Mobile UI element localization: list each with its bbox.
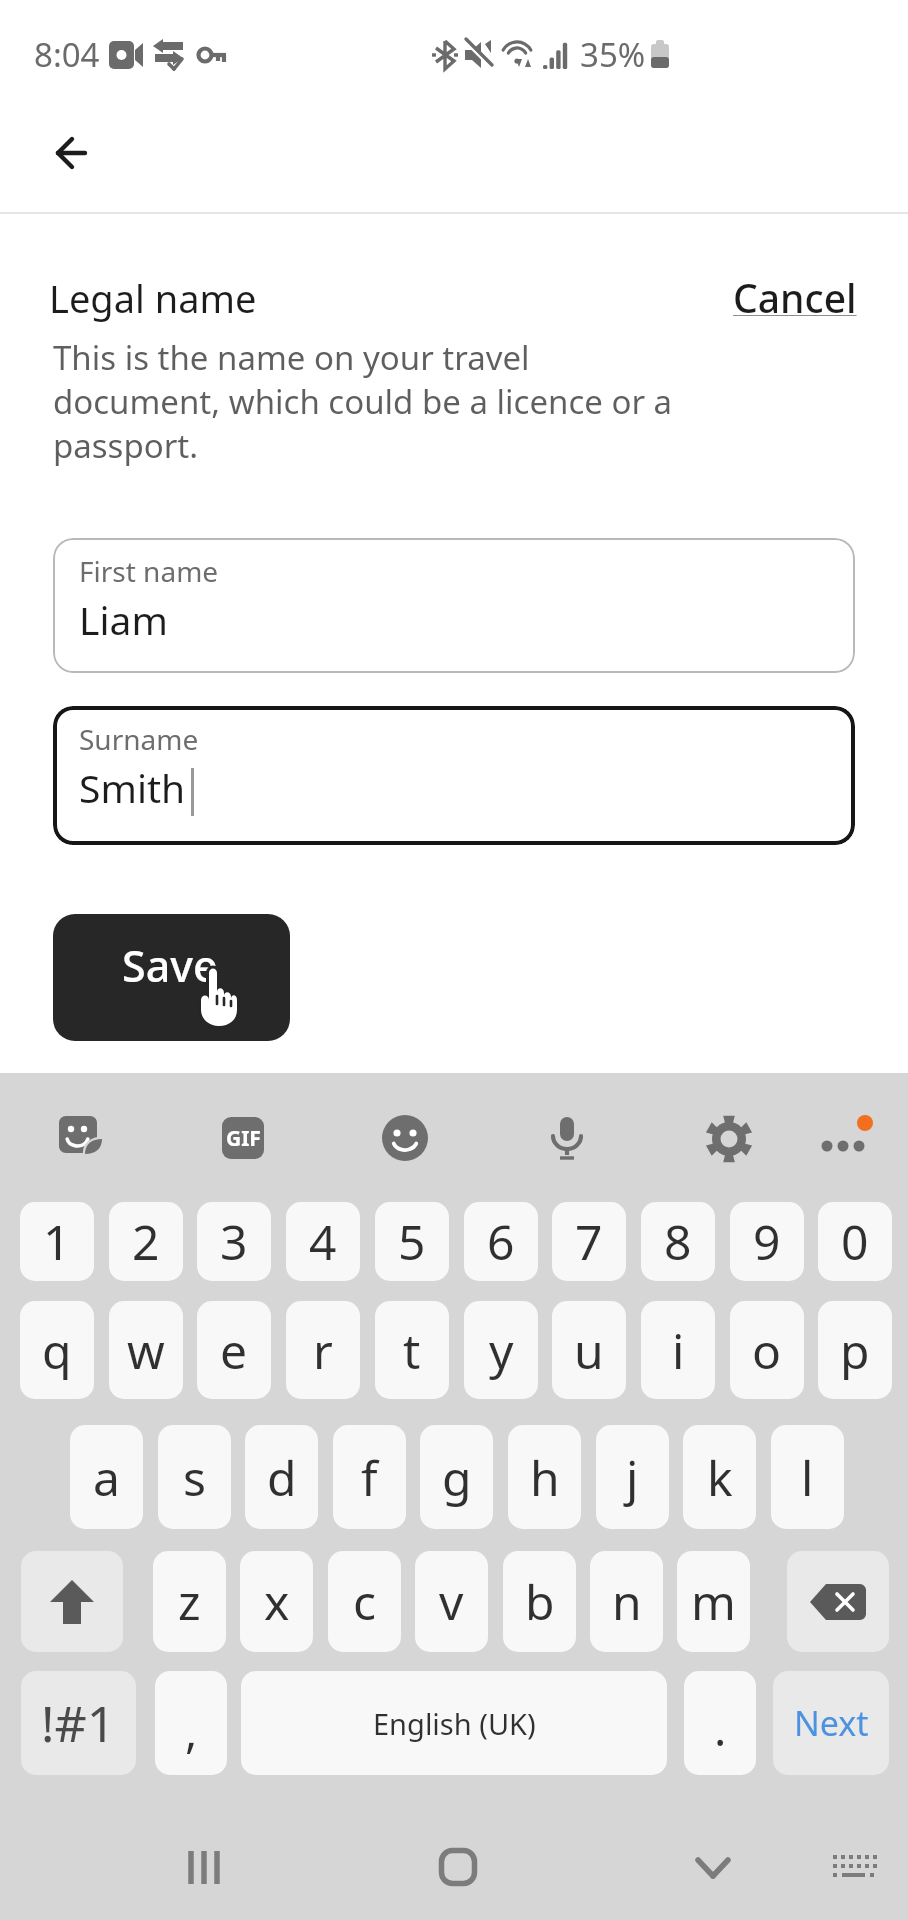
staticText: Smith [79, 761, 186, 814]
staticText: 0 [841, 1209, 869, 1274]
button[interactable]: Cancel [725, 265, 865, 322]
staticText: f [361, 1445, 378, 1510]
button[interactable]: 8 [641, 1202, 715, 1281]
button[interactable]: v [415, 1551, 488, 1652]
button[interactable]: w [109, 1301, 183, 1399]
staticText: GIF [226, 1124, 261, 1153]
staticText: 9 [753, 1209, 781, 1274]
button[interactable]: o [730, 1301, 804, 1399]
button[interactable]: !#1 [21, 1671, 136, 1775]
staticText: s [183, 1445, 206, 1510]
button[interactable]: g [420, 1425, 493, 1529]
button[interactable]: Back [32, 116, 108, 192]
staticText: q [42, 1318, 72, 1383]
button[interactable]: d [245, 1425, 318, 1529]
staticText: u [574, 1318, 604, 1383]
button[interactable]: h [508, 1425, 581, 1529]
staticText: Surname [79, 720, 199, 758]
staticText: Save [122, 936, 218, 995]
staticText: n [612, 1569, 642, 1634]
staticText: h [530, 1445, 560, 1510]
staticText: c [353, 1569, 377, 1634]
button[interactable]: Hide keyboard [643, 1804, 783, 1920]
button[interactable]: English (UK) [241, 1671, 667, 1775]
button[interactable]: j [596, 1425, 669, 1529]
staticText: . [714, 1697, 727, 1760]
button[interactable]: 4 [286, 1202, 360, 1281]
staticText: Legal name [49, 272, 257, 324]
button[interactable]: 0 [818, 1202, 892, 1281]
staticText: !#1 [41, 1689, 116, 1757]
button[interactable]: f [333, 1425, 406, 1529]
button[interactable]: Save [53, 914, 290, 1041]
button[interactable]: 1 [20, 1202, 94, 1281]
button[interactable]: Surname [53, 706, 855, 845]
staticText: 2 [132, 1209, 160, 1274]
staticText: , [185, 1699, 198, 1762]
staticText: d [267, 1445, 297, 1510]
button[interactable]: , [155, 1671, 227, 1775]
button[interactable]: 3 [197, 1202, 271, 1281]
button[interactable]: x [240, 1551, 313, 1652]
button[interactable]: n [590, 1551, 663, 1652]
button[interactable]: 5 [375, 1202, 449, 1281]
staticText: 7 [575, 1209, 603, 1274]
button[interactable]: 7 [552, 1202, 626, 1281]
staticText: z [178, 1569, 201, 1634]
button[interactable]: p [818, 1301, 892, 1399]
button[interactable]: Emoji [371, 1115, 439, 1161]
button[interactable]: Settings [695, 1115, 763, 1161]
button[interactable]: q [20, 1301, 94, 1399]
staticText: v [439, 1569, 464, 1634]
staticText: p [840, 1318, 870, 1383]
button[interactable]: u [552, 1301, 626, 1399]
staticText: 8:04 [34, 32, 100, 77]
staticText: m [691, 1569, 736, 1634]
staticText: 5 [398, 1209, 426, 1274]
button[interactable]: m [677, 1551, 750, 1652]
staticText: This is the name on your travel document… [53, 335, 673, 468]
staticText: i [672, 1318, 685, 1383]
button[interactable]: 6 [464, 1202, 538, 1281]
button[interactable]: i [641, 1301, 715, 1399]
button[interactable]: e [197, 1301, 271, 1399]
button[interactable]: 9 [730, 1202, 804, 1281]
staticText: 4 [309, 1209, 337, 1274]
button[interactable]: z [153, 1551, 226, 1652]
staticText: b [525, 1569, 555, 1634]
staticText: y [489, 1318, 514, 1383]
staticText: Liam [79, 593, 168, 646]
button[interactable]: r [286, 1301, 360, 1399]
button[interactable]: 2 [109, 1202, 183, 1281]
staticText: k [707, 1445, 733, 1510]
button[interactable]: . [684, 1671, 756, 1775]
staticText: w [127, 1318, 165, 1383]
button[interactable]: Home [388, 1802, 528, 1920]
button[interactable]: t [375, 1301, 449, 1399]
button[interactable]: y [464, 1301, 538, 1399]
button[interactable]: k [683, 1425, 756, 1529]
button[interactable]: b [503, 1551, 576, 1652]
staticText: 1 [43, 1209, 71, 1274]
button[interactable]: GIF [209, 1115, 277, 1161]
staticText: x [264, 1569, 290, 1634]
button[interactable]: c [328, 1551, 401, 1652]
button[interactable]: s [158, 1425, 231, 1529]
button[interactable]: Backspace [787, 1551, 889, 1652]
button[interactable]: Next [773, 1671, 889, 1775]
staticText: Next [794, 1700, 869, 1746]
button[interactable]: Sticker [47, 1115, 115, 1161]
button[interactable]: Shift [21, 1551, 123, 1652]
button[interactable]: First name [53, 538, 855, 673]
staticText: r [313, 1318, 333, 1383]
staticText: l [801, 1445, 814, 1510]
button[interactable]: Voice input [533, 1115, 601, 1161]
button[interactable]: More options [813, 1115, 881, 1161]
staticText: 8 [664, 1209, 692, 1274]
button[interactable]: Recents [134, 1802, 274, 1920]
staticText: 3 [220, 1209, 248, 1274]
staticText: Cancel [733, 271, 857, 316]
button[interactable]: Change keyboard [783, 1801, 908, 1920]
button[interactable]: l [771, 1425, 844, 1529]
button[interactable]: a [70, 1425, 143, 1529]
